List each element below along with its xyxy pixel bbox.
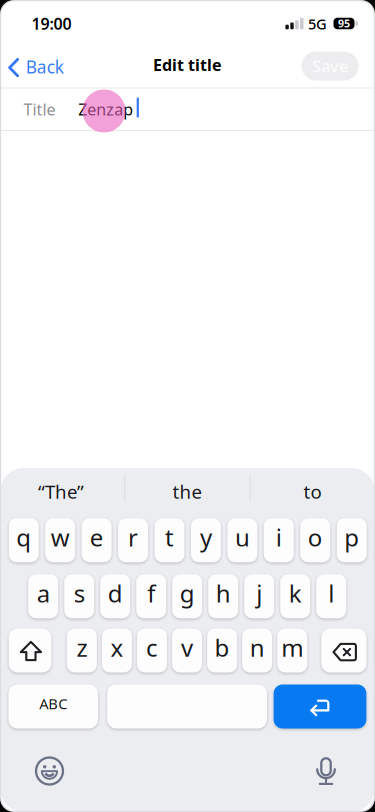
button[interactable]: r (118, 518, 148, 562)
button[interactable]: o (300, 518, 330, 562)
button[interactable]: Back (0, 45, 80, 89)
staticText: u (235, 521, 250, 553)
staticText: h (216, 577, 231, 609)
staticText: p (344, 521, 359, 553)
staticText: a (37, 577, 50, 609)
staticText: v (181, 632, 193, 663)
button[interactable]: Save (301, 51, 358, 80)
button[interactable] (9, 628, 51, 672)
staticText: c (146, 632, 158, 663)
staticText: f (147, 577, 155, 609)
staticText: o (308, 521, 323, 553)
staticText: 95 (338, 16, 350, 30)
button[interactable]: j (244, 574, 274, 618)
button[interactable]: ABC (8, 684, 98, 728)
staticText: x (110, 632, 123, 663)
staticText: r (128, 521, 138, 553)
button[interactable]: u (227, 518, 257, 562)
staticText: Back (26, 55, 64, 78)
button[interactable]: l (316, 574, 346, 618)
staticText: g (180, 577, 195, 609)
button[interactable]: a (28, 574, 58, 618)
staticText: s (74, 577, 85, 609)
button[interactable]: n (242, 628, 272, 672)
button[interactable]: p (337, 518, 367, 562)
staticText: n (250, 632, 265, 663)
staticText: 19:00 (31, 13, 71, 34)
button[interactable]: b (207, 628, 237, 672)
button[interactable]: z (67, 628, 97, 672)
button[interactable] (308, 751, 344, 787)
staticText: to (303, 479, 321, 504)
button[interactable] (321, 628, 366, 672)
staticText: l (328, 577, 334, 609)
staticText: b (215, 632, 230, 663)
button[interactable]: s (64, 574, 94, 618)
staticText: 5G (308, 14, 327, 33)
staticText: t (165, 521, 174, 553)
staticText: ABC (39, 694, 67, 713)
button[interactable]: to (257, 471, 367, 511)
staticText: k (289, 577, 302, 609)
button[interactable]: i (264, 518, 294, 562)
staticText: i (276, 521, 282, 553)
button[interactable]: e (82, 518, 112, 562)
staticText: z (76, 632, 87, 663)
button[interactable]: the (132, 471, 242, 511)
button[interactable]: m (277, 628, 307, 672)
staticText: w (51, 521, 70, 553)
staticText: the (172, 479, 202, 504)
button[interactable] (31, 752, 67, 788)
staticText: j (256, 577, 262, 609)
staticText: q (16, 521, 31, 553)
button[interactable] (107, 684, 267, 728)
staticText: “The” (38, 479, 84, 504)
button[interactable]: h (208, 574, 238, 618)
button[interactable]: d (100, 574, 130, 618)
button[interactable]: y (191, 518, 221, 562)
button[interactable]: f (136, 574, 166, 618)
button[interactable]: v (172, 628, 202, 672)
button[interactable]: “The” (6, 471, 116, 511)
staticText: Zenzap (78, 99, 133, 120)
staticText: e (90, 521, 104, 553)
button[interactable]: w (45, 518, 75, 562)
button[interactable]: g (172, 574, 202, 618)
button[interactable]: x (102, 628, 132, 672)
button[interactable]: k (280, 574, 310, 618)
button[interactable]: c (137, 628, 167, 672)
button[interactable] (274, 684, 366, 728)
button[interactable]: t (154, 518, 184, 562)
staticText: Title (23, 99, 55, 120)
staticText: Edit title (153, 54, 222, 75)
staticText: y (200, 521, 212, 553)
staticText: Save (312, 55, 348, 77)
staticText: d (108, 577, 123, 609)
staticText: m (281, 632, 303, 663)
button[interactable]: q (9, 518, 39, 562)
